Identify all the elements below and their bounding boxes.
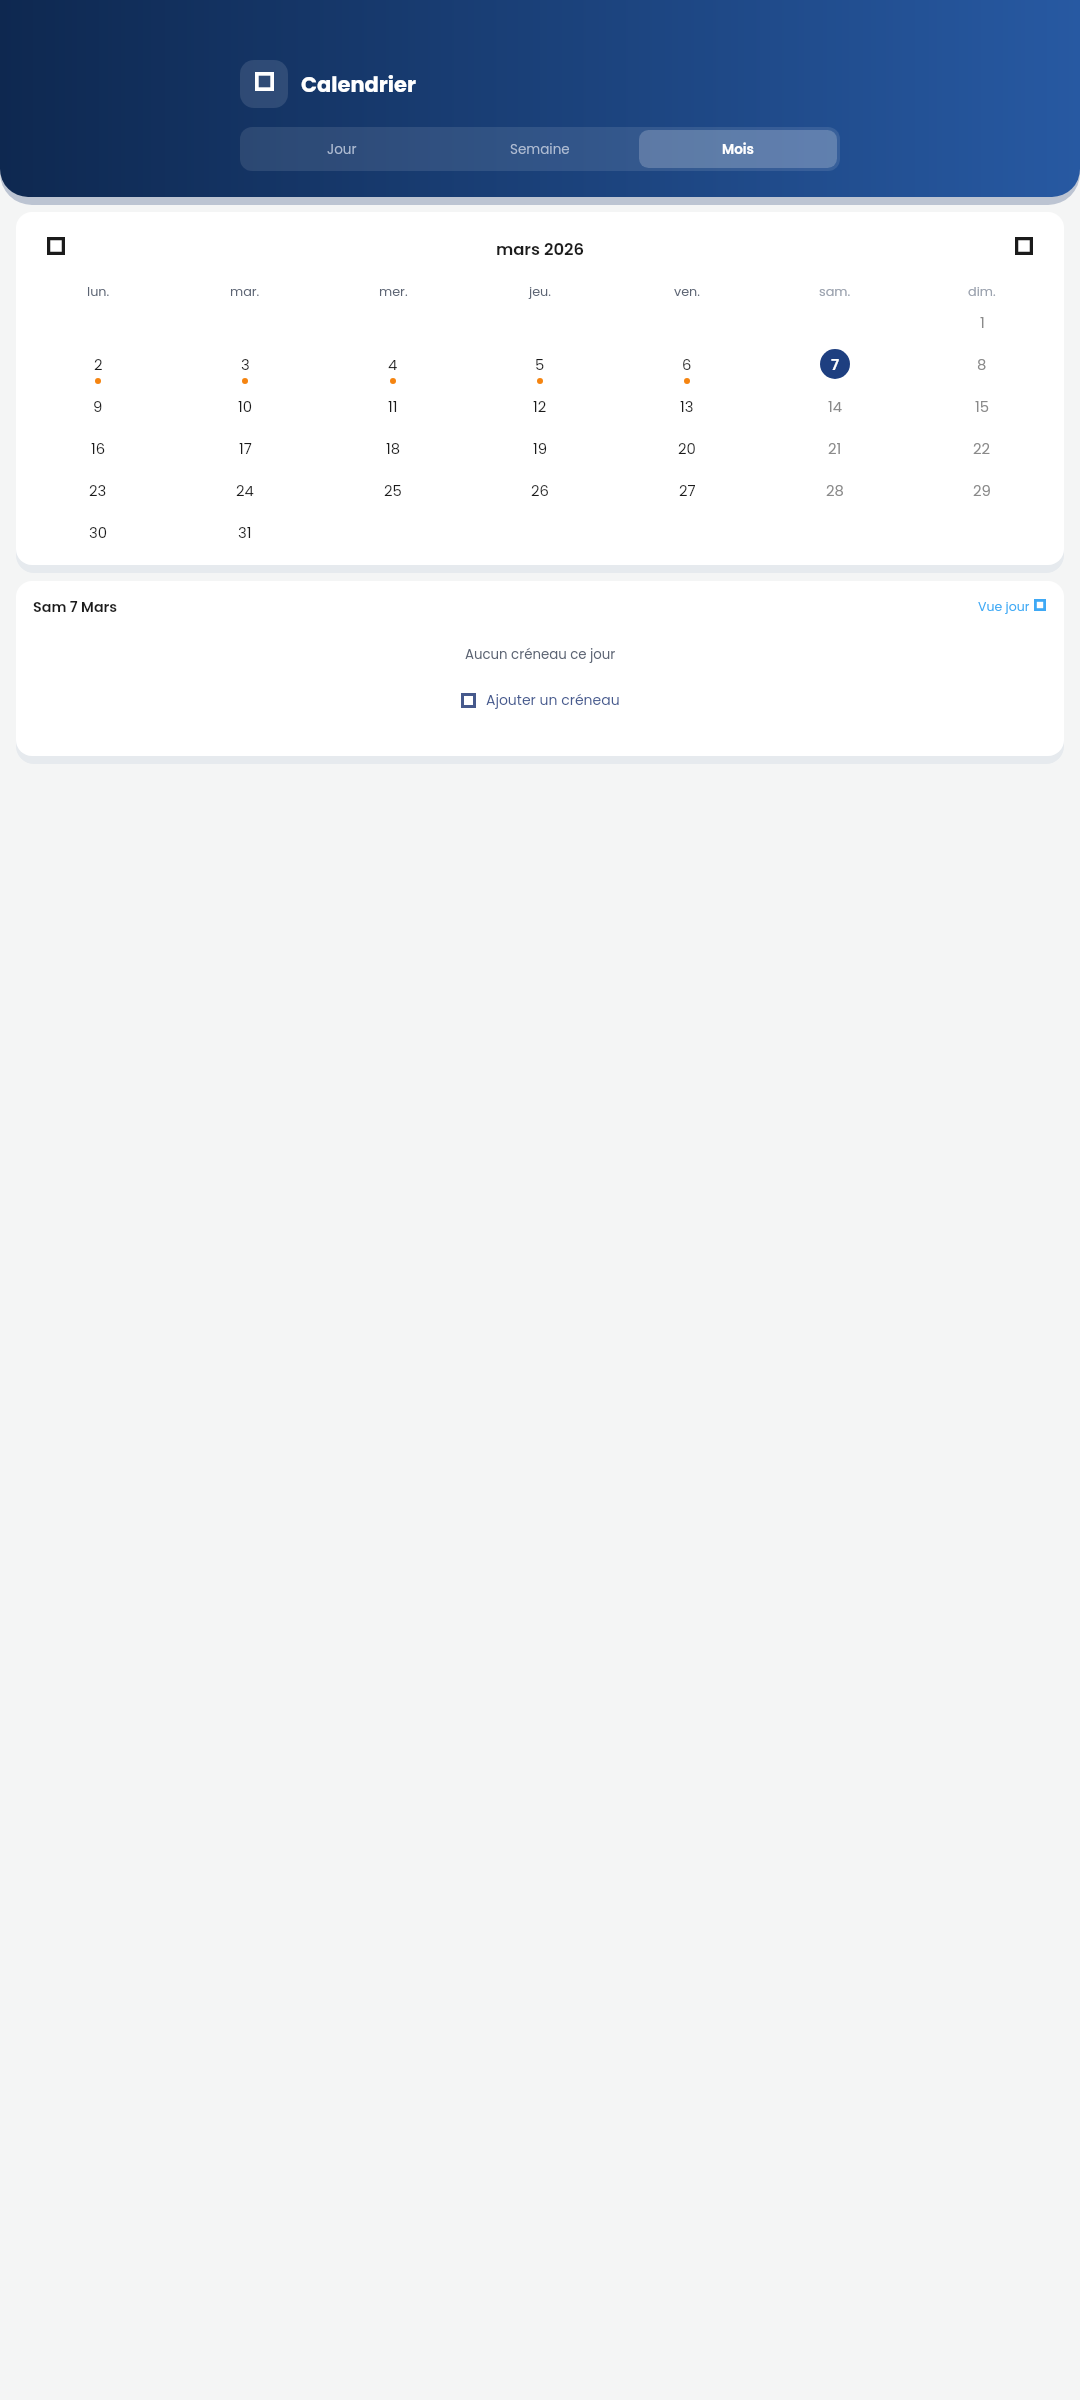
staticText: jeu. bbox=[529, 283, 551, 301]
button[interactable]: 22 bbox=[942, 427, 1022, 469]
button[interactable]: 2 bbox=[58, 343, 138, 385]
staticText: sam. bbox=[819, 283, 851, 301]
staticText: 1 bbox=[980, 312, 985, 333]
button[interactable]: 12 bbox=[500, 385, 580, 427]
button[interactable]: 14 bbox=[795, 385, 875, 427]
staticText: Jour bbox=[327, 140, 357, 159]
button[interactable]: 31 bbox=[205, 511, 285, 553]
staticText: ven. bbox=[674, 283, 700, 301]
staticText: mars 2026 bbox=[83, 238, 997, 261]
staticText: 3 bbox=[241, 354, 250, 375]
button[interactable]: 10 bbox=[205, 385, 285, 427]
button[interactable]: 23 bbox=[58, 469, 138, 511]
staticText: 8 bbox=[977, 354, 987, 375]
staticText: 4 bbox=[388, 354, 398, 375]
staticText: 19 bbox=[533, 438, 548, 459]
staticText: 24 bbox=[236, 480, 254, 501]
staticText: 28 bbox=[826, 480, 844, 501]
button[interactable]: 4 bbox=[353, 343, 433, 385]
staticText: 11 bbox=[388, 396, 398, 417]
staticText: 30 bbox=[89, 522, 108, 543]
button[interactable]: 26 bbox=[500, 469, 580, 511]
button[interactable]: 30 bbox=[58, 511, 138, 553]
staticText: 25 bbox=[384, 480, 402, 501]
staticText: 27 bbox=[679, 480, 696, 501]
staticText: mer. bbox=[379, 283, 408, 301]
staticText: Semaine bbox=[510, 140, 570, 159]
staticText: 22 bbox=[973, 438, 991, 459]
button[interactable]: 25 bbox=[353, 469, 433, 511]
staticText: mar. bbox=[230, 283, 260, 301]
staticText: Aucun créneau ce jour bbox=[465, 645, 616, 664]
staticText: 20 bbox=[678, 438, 696, 459]
button[interactable]: 18 bbox=[353, 427, 433, 469]
staticText: 7 bbox=[831, 354, 840, 375]
staticText: 12 bbox=[533, 396, 547, 417]
staticText: 6 bbox=[682, 354, 692, 375]
button[interactable]: 8 bbox=[942, 343, 1022, 385]
button[interactable]: 27 bbox=[647, 469, 727, 511]
button[interactable]: 16 bbox=[58, 427, 138, 469]
button[interactable]: 21 bbox=[795, 427, 875, 469]
button[interactable]: Ajouter un créneau bbox=[461, 690, 620, 710]
button[interactable]: 7 bbox=[795, 343, 875, 385]
staticText: 15 bbox=[975, 396, 990, 417]
staticText: 29 bbox=[973, 480, 991, 501]
staticText: 16 bbox=[91, 438, 106, 459]
staticText: 13 bbox=[680, 396, 694, 417]
staticText: 26 bbox=[531, 480, 549, 501]
staticText: 31 bbox=[238, 522, 252, 543]
button[interactable]: 19 bbox=[500, 427, 580, 469]
button[interactable]: 3 bbox=[205, 343, 285, 385]
button[interactable]: 29 bbox=[942, 469, 1022, 511]
staticText: 9 bbox=[93, 396, 103, 417]
button[interactable]: Previous month bbox=[47, 228, 83, 264]
button[interactable]: 6 bbox=[647, 343, 727, 385]
staticText: Ajouter un créneau bbox=[486, 690, 620, 710]
staticText: 10 bbox=[238, 396, 253, 417]
staticText: Calendrier bbox=[301, 70, 416, 99]
staticText: 14 bbox=[828, 396, 843, 417]
button[interactable]: 5 bbox=[500, 343, 580, 385]
staticText: lun. bbox=[87, 283, 110, 301]
button[interactable]: Next month bbox=[997, 228, 1033, 264]
staticText: 23 bbox=[89, 480, 107, 501]
staticText: Mois bbox=[722, 140, 754, 159]
button[interactable]: 13 bbox=[647, 385, 727, 427]
staticText: 5 bbox=[535, 354, 545, 375]
button[interactable]: Calendar bbox=[240, 60, 288, 108]
button[interactable]: 28 bbox=[795, 469, 875, 511]
staticText: 18 bbox=[386, 438, 401, 459]
button[interactable]: 9 bbox=[58, 385, 138, 427]
button[interactable]: Jour bbox=[243, 130, 441, 168]
staticText: 2 bbox=[94, 354, 103, 375]
button[interactable]: 15 bbox=[942, 385, 1022, 427]
button[interactable]: 24 bbox=[205, 469, 285, 511]
button[interactable]: Vue jour bbox=[978, 598, 1046, 615]
staticText: Sam 7 Mars bbox=[33, 597, 118, 617]
button[interactable]: Semaine bbox=[441, 130, 639, 168]
staticText: 21 bbox=[828, 438, 842, 459]
button[interactable]: 20 bbox=[647, 427, 727, 469]
button[interactable]: 11 bbox=[353, 385, 433, 427]
staticText: Vue jour bbox=[978, 598, 1030, 615]
staticText: dim. bbox=[968, 283, 996, 301]
button[interactable]: 1 bbox=[942, 301, 1022, 343]
button[interactable]: 17 bbox=[205, 427, 285, 469]
staticText: 17 bbox=[239, 438, 252, 459]
button[interactable]: Mois bbox=[639, 130, 837, 168]
